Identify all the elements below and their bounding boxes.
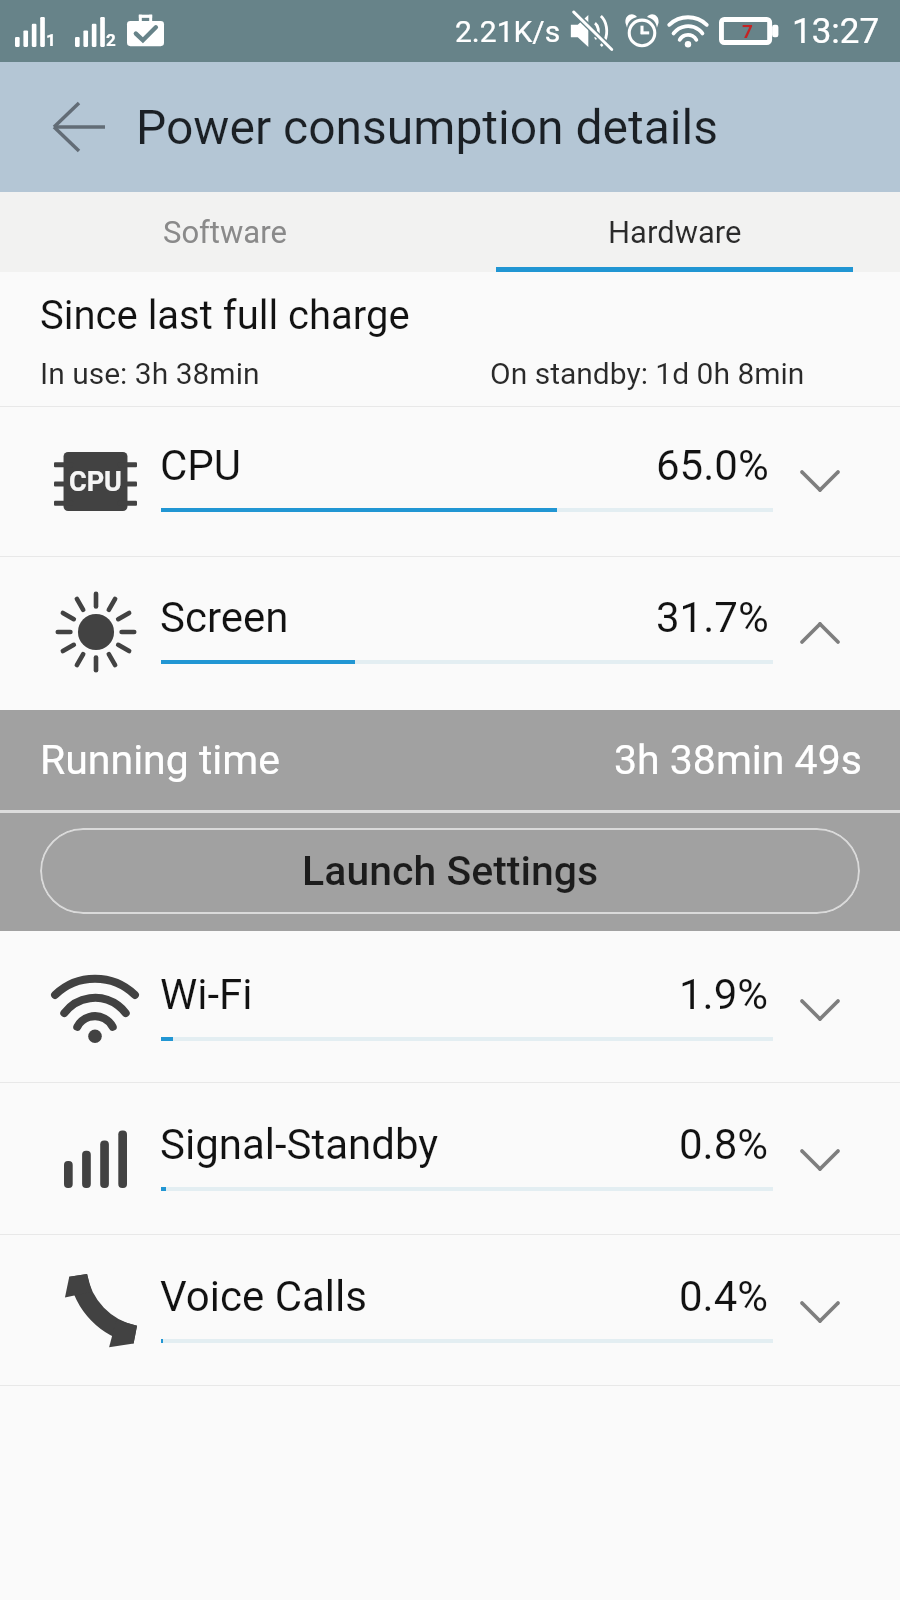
staticText: CPU xyxy=(69,466,122,498)
staticText: Hardware xyxy=(608,214,742,250)
staticText: 65.0% xyxy=(656,441,769,490)
button[interactable]: Voice Calls xyxy=(0,1235,900,1385)
button[interactable]: Signal-Standby xyxy=(0,1083,900,1234)
staticText: Wi-Fi xyxy=(160,970,253,1019)
staticText: 13:27 xyxy=(792,11,880,52)
staticText: Screen xyxy=(160,593,289,642)
button[interactable]: Hardware xyxy=(450,192,900,272)
staticText: CPU xyxy=(160,441,242,490)
staticText: 2 xyxy=(106,30,116,50)
staticText: In use: 3h 38min xyxy=(40,356,260,391)
staticText: On standby: 1d 0h 8min xyxy=(490,356,805,391)
button[interactable]: Software xyxy=(0,192,450,272)
button[interactable]: Expand xyxy=(791,1283,849,1341)
staticText: 7 xyxy=(742,20,753,42)
staticText: 31.7% xyxy=(656,593,769,642)
staticText: 1 xyxy=(46,30,56,50)
staticText: Running time xyxy=(40,736,281,784)
button[interactable]: Back xyxy=(44,97,104,157)
staticText: 0.4% xyxy=(679,1272,769,1321)
staticText: Software xyxy=(163,214,287,250)
button[interactable]: CPU xyxy=(0,407,900,556)
button[interactable]: Launch Settings xyxy=(40,828,860,914)
button[interactable]: Screen xyxy=(0,557,900,710)
staticText: Since last full charge xyxy=(40,292,410,339)
staticText: Launch Settings xyxy=(302,847,599,895)
button[interactable]: Expand xyxy=(791,452,849,510)
staticText: 1.9% xyxy=(679,970,769,1019)
staticText: Power consumption details xyxy=(136,99,718,155)
button[interactable]: Wi-Fi xyxy=(0,931,900,1082)
staticText: 3h 38min 49s xyxy=(614,736,862,784)
staticText: 0.8% xyxy=(679,1120,769,1169)
button[interactable]: Collapse xyxy=(791,604,849,662)
staticText: Voice Calls xyxy=(160,1272,367,1321)
button[interactable]: Expand xyxy=(791,1131,849,1189)
staticText: Signal-Standby xyxy=(160,1120,439,1169)
button[interactable]: Expand xyxy=(791,981,849,1039)
staticText: 2.21K/s xyxy=(455,14,561,49)
